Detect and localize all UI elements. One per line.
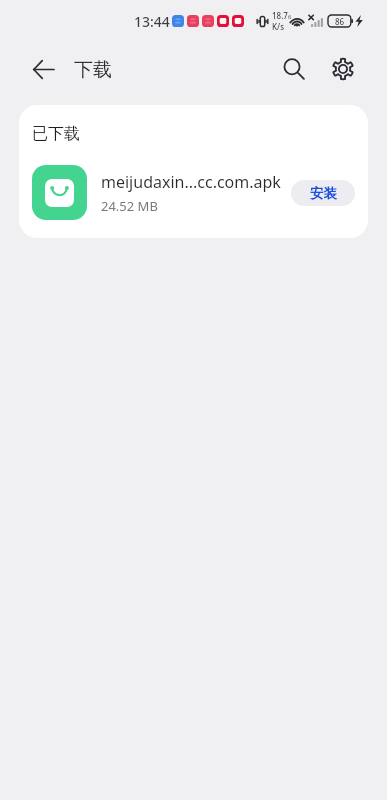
button[interactable]: Back: [23, 49, 63, 89]
button[interactable]: Search: [274, 49, 314, 89]
staticText: meijudaxin...cc.com.apk: [101, 171, 281, 193]
staticText: 安装: [310, 185, 337, 202]
staticText: 86: [335, 16, 345, 27]
staticText: K/s: [272, 21, 285, 32]
staticText: 已下载: [32, 124, 80, 144]
staticText: 下载: [74, 58, 112, 82]
button[interactable]: meijudaxin...cc.com.apk: [19, 165, 368, 238]
staticText: 13:44: [134, 12, 170, 31]
button[interactable]: 安装: [291, 180, 355, 206]
staticText: 6: [288, 13, 292, 21]
staticText: 24.52 MB: [101, 197, 158, 215]
button[interactable]: Settings: [323, 49, 363, 89]
staticText: 18.7: [272, 10, 288, 21]
